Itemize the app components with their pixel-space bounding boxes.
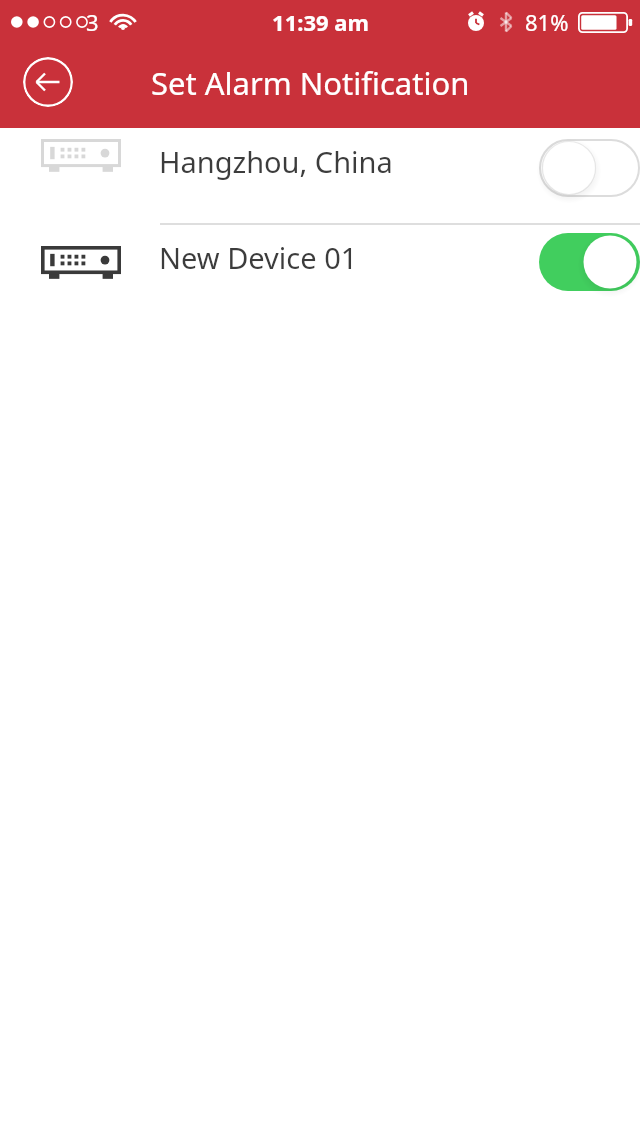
staticText: Hangzhou, China xyxy=(159,142,393,181)
button[interactable]: Alarm on xyxy=(539,233,640,291)
button[interactable]: Hangzhou, China xyxy=(0,128,640,223)
staticText: 11:39 am xyxy=(272,7,369,37)
staticText: 3 xyxy=(86,7,99,37)
staticText: New Device 01 xyxy=(159,238,358,277)
button[interactable]: Back xyxy=(23,57,73,107)
staticText: 81% xyxy=(525,7,569,37)
button[interactable]: New Device 01 xyxy=(0,225,640,320)
button[interactable]: Alarm off xyxy=(539,139,640,197)
staticText: Set Alarm Notification xyxy=(151,62,470,104)
